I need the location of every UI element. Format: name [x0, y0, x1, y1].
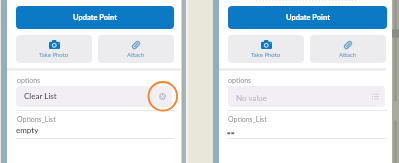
button[interactable]: Update Point — [16, 6, 174, 29]
staticText: Update Point — [73, 13, 117, 22]
button[interactable]: Attach — [98, 35, 174, 63]
staticText: options — [228, 76, 252, 84]
button[interactable]: Take Photo — [228, 35, 304, 63]
staticText: Update Point — [286, 13, 330, 22]
staticText: options — [17, 76, 41, 84]
staticText: Take Photo — [251, 51, 281, 58]
button[interactable]: Clear value — [159, 93, 166, 100]
staticText: Options_List — [17, 115, 56, 123]
button[interactable]: Update Point — [228, 6, 387, 29]
staticText: No value — [236, 93, 267, 103]
button[interactable]: Take Photo — [16, 35, 92, 63]
button[interactable]: Clear List — [16, 86, 172, 107]
button[interactable]: Attach — [310, 35, 386, 63]
staticText: Attach — [339, 51, 357, 58]
staticText: Attach — [127, 51, 145, 58]
staticText: empty — [16, 125, 39, 135]
button[interactable]: Choose from list — [372, 93, 379, 100]
staticText: Clear List — [24, 91, 57, 101]
staticText: Options_List — [228, 115, 267, 123]
staticText: Take Photo — [39, 51, 69, 58]
button[interactable]: No value — [228, 86, 385, 107]
